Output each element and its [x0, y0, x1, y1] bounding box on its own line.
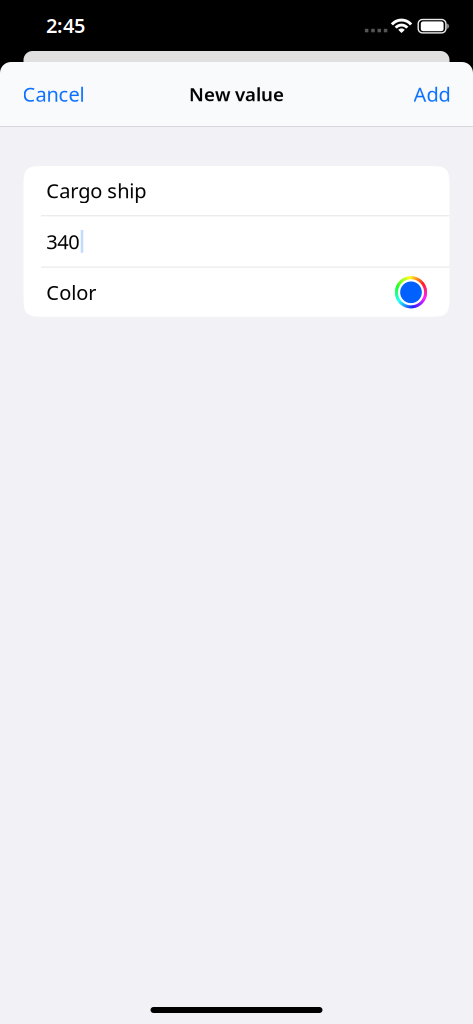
button[interactable]: Cancel: [22, 68, 100, 120]
staticText: 340: [46, 228, 79, 255]
button[interactable]: Add: [397, 68, 450, 120]
button[interactable]: Color picker: [395, 276, 427, 308]
staticText: Color: [46, 279, 96, 306]
staticText: Cargo ship: [46, 177, 146, 204]
button[interactable]: Cargo ship: [23, 166, 449, 215]
button[interactable]: 340: [23, 216, 449, 266]
staticText: Cancel: [22, 81, 84, 107]
button[interactable]: Color: [23, 268, 449, 317]
staticText: New value: [189, 82, 284, 106]
staticText: 2:45: [46, 12, 85, 39]
staticText: Add: [413, 81, 450, 107]
